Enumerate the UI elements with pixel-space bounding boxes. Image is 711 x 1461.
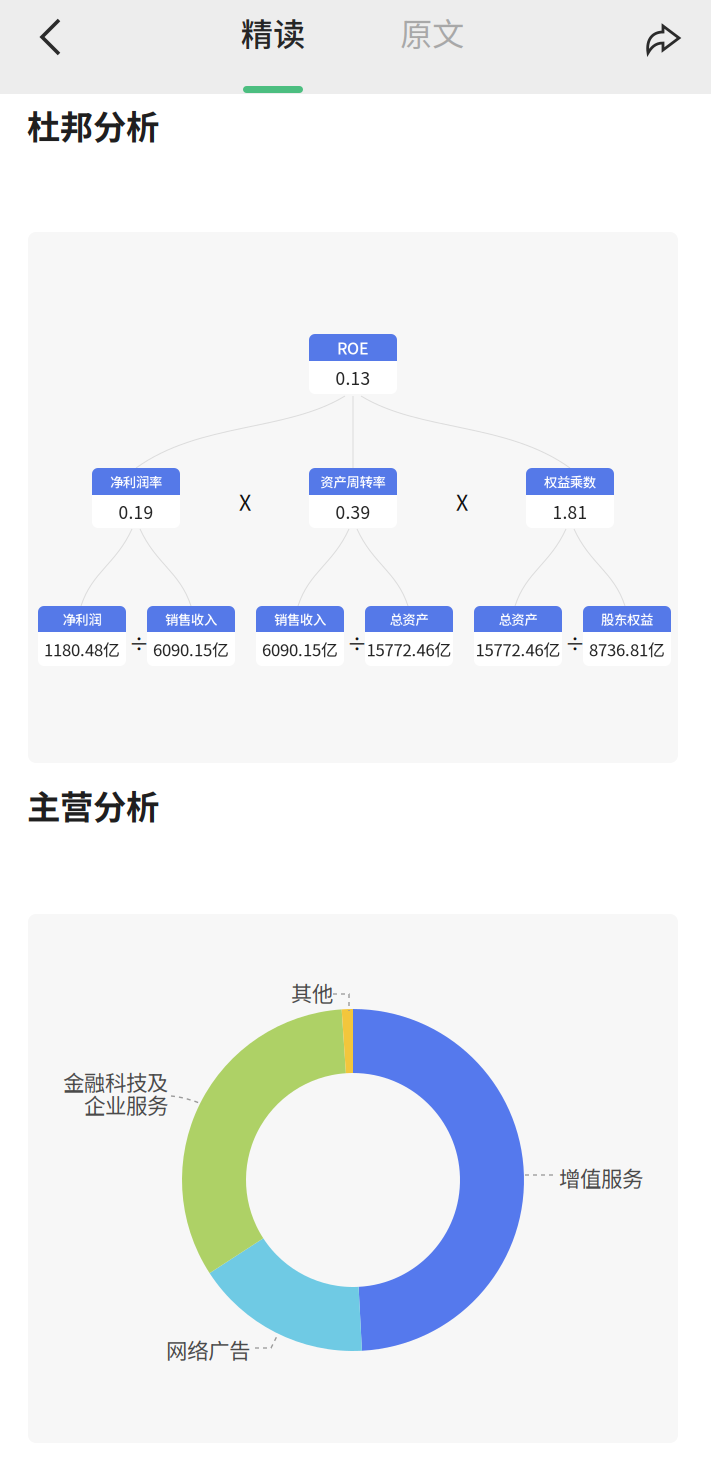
staticText: 原文	[400, 9, 464, 55]
button[interactable]: 原文	[382, 12, 482, 87]
staticText: 股东权益	[601, 609, 653, 629]
staticText: 1180.48亿	[44, 637, 120, 661]
staticText: 销售收入	[274, 609, 326, 629]
staticText: 6090.15亿	[153, 637, 229, 661]
button[interactable]: Back	[17, 5, 85, 69]
staticText: 0.13	[335, 365, 370, 390]
staticText: 1.81	[552, 499, 587, 524]
staticText: 杜邦分析	[27, 101, 159, 149]
staticText: 0.19	[118, 499, 153, 524]
staticText: ÷	[565, 628, 585, 657]
staticText: 6090.15亿	[262, 637, 338, 661]
staticText: 净利润	[62, 609, 101, 629]
staticText: 净利润率	[110, 472, 162, 491]
staticText: 主营分析	[27, 781, 159, 829]
staticText: 精读	[241, 9, 305, 55]
staticText: X	[239, 486, 251, 517]
staticText: 总资产	[498, 609, 537, 629]
staticText: X	[456, 486, 468, 517]
staticText: 增值服务	[559, 1162, 643, 1193]
staticText: 销售收入	[165, 609, 217, 629]
staticText: ÷	[129, 628, 149, 657]
staticText: 15772.46亿	[366, 637, 451, 661]
staticText: 网络广告	[166, 1334, 250, 1365]
staticText: 总资产	[389, 609, 428, 629]
staticText: 权益乘数	[544, 472, 596, 491]
staticText: ROE	[337, 336, 369, 359]
staticText: 0.39	[335, 499, 370, 524]
staticText: 其他	[291, 977, 333, 1008]
staticText: 15772.46亿	[475, 637, 560, 661]
staticText: 金融科技及	[63, 1066, 168, 1097]
staticText: ÷	[347, 628, 367, 657]
staticText: 企业服务	[84, 1089, 168, 1120]
button[interactable]: 精读	[223, 12, 323, 87]
button[interactable]: Share	[643, 8, 693, 72]
staticText: 资产周转率	[320, 472, 385, 491]
staticText: 8736.81亿	[589, 637, 665, 661]
